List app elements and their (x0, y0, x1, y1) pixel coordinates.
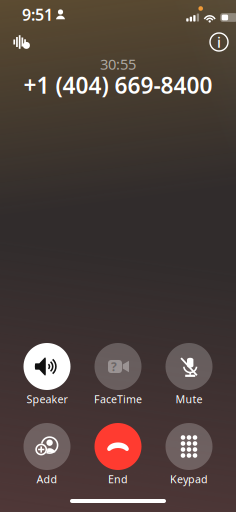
button[interactable]: Speaker (11, 343, 82, 408)
staticText: 9:51 (22, 4, 53, 25)
staticText: FaceTime (94, 392, 142, 406)
staticText: ? (111, 358, 117, 374)
button[interactable]: Audio output (7, 29, 37, 55)
button[interactable]: End (82, 423, 153, 488)
button[interactable]: Call details (206, 29, 232, 55)
staticText: Add (36, 472, 57, 486)
button[interactable]: Mute (153, 343, 224, 408)
button[interactable]: ? (82, 343, 153, 408)
staticText: Mute (175, 392, 202, 406)
button[interactable]: Add (11, 423, 82, 488)
staticText: i (217, 32, 221, 52)
staticText: 30:55 (100, 54, 136, 74)
button[interactable]: Keypad (153, 423, 224, 488)
staticText: End (108, 472, 128, 486)
staticText: Keypad (170, 472, 208, 486)
staticText: +1 (404) 669-8400 (23, 70, 212, 100)
staticText: Speaker (26, 392, 67, 406)
